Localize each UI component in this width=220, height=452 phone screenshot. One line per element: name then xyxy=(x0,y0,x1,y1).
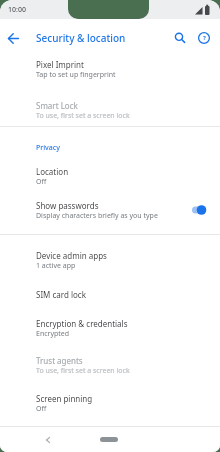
button[interactable]: Trust agents xyxy=(0,348,220,382)
staticText: Encrypted xyxy=(36,329,70,339)
button[interactable] xyxy=(5,30,22,47)
staticText: Show passwords xyxy=(36,200,99,211)
staticText: ? xyxy=(203,34,206,42)
button[interactable]: Smart Lock xyxy=(0,93,220,127)
button[interactable]: Location xyxy=(0,159,220,193)
staticText: 1 active app xyxy=(36,261,76,271)
button[interactable]: Pixel Imprint xyxy=(0,52,220,86)
button[interactable] xyxy=(172,30,188,46)
button[interactable]: Device admin apps xyxy=(0,243,220,277)
staticText: To use, first set a screen lock xyxy=(36,111,130,121)
staticText: Tap to set up fingerprint xyxy=(36,70,116,80)
staticText: SIM card lock xyxy=(36,289,86,300)
button[interactable]: Show passwords xyxy=(0,193,220,227)
staticText: Encryption & credentials xyxy=(36,318,128,329)
button[interactable] xyxy=(42,434,54,446)
staticText: Location xyxy=(36,166,69,177)
staticText: Off xyxy=(36,177,47,187)
button[interactable]: ? xyxy=(196,30,212,46)
staticText: Display characters briefly as you type xyxy=(36,211,158,221)
staticText: 10:00 xyxy=(8,5,26,15)
button[interactable]: SIM card lock xyxy=(0,281,220,307)
button[interactable]: Encryption & credentials xyxy=(0,311,220,345)
staticText: Smart Lock xyxy=(36,100,78,111)
staticText: Off xyxy=(36,404,47,414)
staticText: Screen pinning xyxy=(36,393,93,404)
staticText: Device admin apps xyxy=(36,250,107,261)
button[interactable] xyxy=(100,437,118,442)
button[interactable]: Screen pinning xyxy=(0,386,220,420)
staticText: Privacy xyxy=(36,143,60,153)
staticText: Trust agents xyxy=(36,355,83,366)
staticText: Security & location xyxy=(36,31,126,45)
staticText: Pixel Imprint xyxy=(36,59,84,70)
staticText: To use, first set a screen lock xyxy=(36,366,130,376)
